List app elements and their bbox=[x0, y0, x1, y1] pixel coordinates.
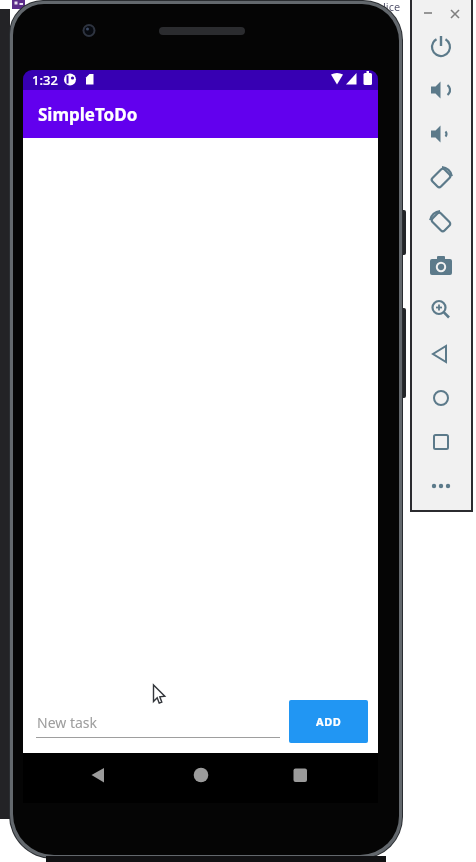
button[interactable] bbox=[36, 696, 280, 738]
staticText: 1:32 bbox=[32, 71, 58, 89]
button[interactable] bbox=[423, 28, 459, 64]
button[interactable] bbox=[275, 757, 325, 793]
button[interactable] bbox=[423, 424, 459, 460]
button[interactable] bbox=[445, 5, 465, 21]
button[interactable] bbox=[423, 468, 459, 504]
staticText: New task bbox=[37, 713, 97, 732]
button[interactable] bbox=[423, 336, 459, 372]
button[interactable]: ADD bbox=[289, 700, 368, 743]
button[interactable] bbox=[423, 292, 459, 328]
button[interactable] bbox=[423, 72, 459, 108]
staticText: lice bbox=[383, 0, 401, 14]
button[interactable] bbox=[418, 5, 438, 21]
staticText: ADD bbox=[316, 714, 342, 729]
button[interactable] bbox=[423, 204, 459, 240]
button[interactable] bbox=[423, 380, 459, 416]
staticText: SimpleToDo bbox=[38, 103, 138, 126]
button[interactable] bbox=[423, 248, 459, 284]
button[interactable]: SimpleToDo bbox=[38, 103, 138, 126]
button[interactable] bbox=[79, 757, 129, 793]
button[interactable] bbox=[176, 757, 226, 793]
button[interactable] bbox=[423, 160, 459, 196]
button[interactable] bbox=[423, 116, 459, 152]
